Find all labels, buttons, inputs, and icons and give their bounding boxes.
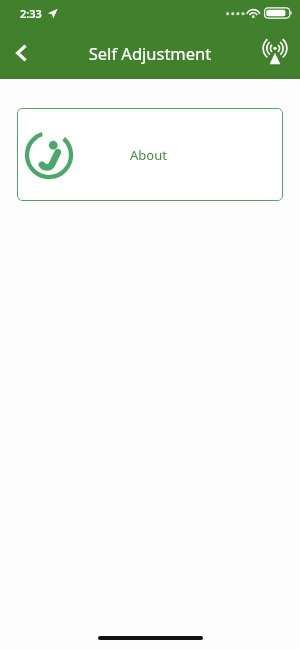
staticText: 2:33	[20, 6, 42, 21]
button[interactable]: About	[17, 108, 283, 201]
button[interactable]: Broadcast	[254, 32, 296, 74]
staticText: Self Adjustment	[48, 42, 252, 64]
button[interactable]: Back	[0, 31, 44, 75]
staticText: About	[130, 146, 167, 164]
